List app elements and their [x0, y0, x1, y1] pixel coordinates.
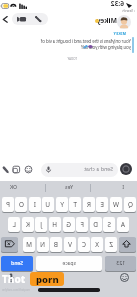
button[interactable]: H [49, 217, 61, 232]
staticText: Q [127, 200, 133, 209]
staticText: space [62, 260, 76, 267]
staticText: T [73, 200, 77, 209]
button[interactable]: D [90, 217, 102, 232]
staticText: TODAY [67, 57, 77, 61]
staticText: Mikey [96, 16, 117, 25]
button[interactable]: C [78, 237, 90, 252]
button[interactable]: E [96, 197, 108, 212]
staticText: Z [109, 240, 113, 249]
button[interactable]: I [29, 197, 41, 212]
button[interactable]: N [37, 237, 49, 252]
button[interactable]: V [64, 237, 76, 252]
staticText: A [120, 220, 125, 229]
button[interactable]: X [91, 237, 103, 252]
staticText: Send a chat [84, 166, 113, 173]
button[interactable]: Thot [1, 271, 35, 286]
button[interactable]: R [83, 197, 95, 212]
staticText: B [53, 240, 58, 249]
button[interactable]: F [76, 217, 88, 232]
staticText: ‹ Search [122, 8, 135, 13]
button[interactable]: S [103, 217, 115, 232]
button[interactable]: Send a chat [41, 163, 118, 177]
staticText: porn [36, 273, 59, 286]
staticText: F [80, 220, 84, 229]
button[interactable]: P [2, 197, 14, 212]
staticText: E [100, 200, 104, 209]
staticText: H [52, 220, 57, 229]
button[interactable]: Send [1, 256, 33, 271]
button[interactable] [2, 16, 8, 23]
staticText: Send [11, 260, 23, 267]
staticText: MIKEY [113, 31, 126, 36]
button[interactable]: K [22, 217, 34, 232]
staticText: OK [9, 184, 17, 191]
button[interactable] [120, 163, 132, 175]
staticText: onlyfans.com/thotporn [2, 288, 31, 292]
staticText: N [40, 240, 45, 249]
button[interactable]: T [69, 197, 81, 212]
button[interactable]: Y [56, 197, 68, 212]
staticText: you playing with yourself [81, 44, 131, 50]
staticText: Your onlyfans is the best and i bought a… [41, 38, 131, 44]
staticText: U [45, 200, 50, 209]
staticText: J [40, 220, 42, 229]
button[interactable] [12, 13, 48, 25]
button[interactable]: W [110, 197, 122, 212]
button[interactable]: L [8, 217, 20, 232]
staticText: S [107, 220, 111, 229]
staticText: X [95, 240, 99, 249]
button[interactable]: G [63, 217, 75, 232]
staticText: Yes [65, 184, 73, 191]
staticText: I [33, 200, 36, 209]
staticText: 6:32 [110, 0, 124, 8]
staticText: L [12, 220, 16, 229]
staticText: R [86, 200, 91, 209]
staticText: C [81, 240, 86, 249]
button[interactable]: Q [124, 197, 136, 212]
staticText: P [6, 200, 10, 209]
staticText: V [68, 240, 72, 249]
staticText: K [25, 220, 30, 229]
staticText: D [93, 220, 98, 229]
staticText: Y [60, 200, 64, 209]
staticText: W [112, 200, 119, 209]
button[interactable]: J [35, 217, 47, 232]
staticText: 123 [116, 260, 125, 267]
button[interactable]: B [50, 237, 62, 252]
button[interactable]: 123 [105, 256, 136, 271]
button[interactable]: U [42, 197, 54, 212]
staticText: G [66, 220, 71, 229]
staticText: I [122, 184, 124, 191]
staticText: M [26, 240, 32, 249]
staticText: O [18, 200, 24, 209]
button[interactable]: O [15, 197, 27, 212]
button[interactable]: Z [105, 237, 117, 252]
button[interactable]: M [23, 237, 35, 252]
button[interactable] [1, 237, 18, 252]
button[interactable]: space [36, 256, 102, 271]
button[interactable]: A [117, 217, 129, 232]
staticText: Thot [2, 272, 26, 286]
button[interactable] [119, 237, 136, 252]
